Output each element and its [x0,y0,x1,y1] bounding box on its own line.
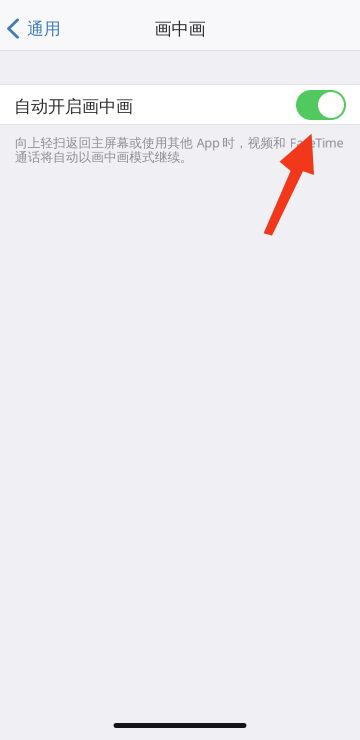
staticText: 自动开启画中画 [14,96,133,117]
staticText: 向上轻扫返回主屏幕或使用其他 App 时，视频和 FaceTime 通话将自动以… [15,134,343,165]
staticText: 画中画 [154,18,205,40]
button[interactable]: 自动开启画中画 [0,84,360,125]
staticText: 通用 [27,18,61,40]
button[interactable]: 通用 [0,7,73,51]
